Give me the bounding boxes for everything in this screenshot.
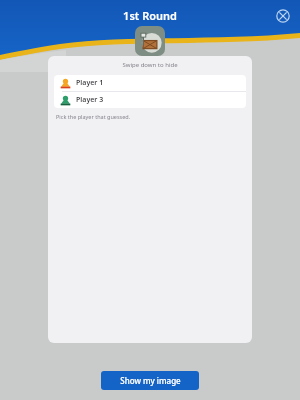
button[interactable]: Close (272, 5, 294, 27)
staticText: Show my image (120, 375, 181, 386)
button[interactable]: Player 1 (54, 75, 246, 91)
button[interactable]: Game image (135, 26, 165, 56)
staticText: Player 1 (76, 78, 104, 88)
button[interactable]: Player 3 (54, 92, 246, 108)
button[interactable]: Show my image (101, 371, 199, 390)
staticText: Swipe down to hide (48, 61, 252, 69)
staticText: Player 3 (76, 95, 104, 105)
staticText: 1st Round (123, 8, 177, 23)
staticText: Pick the player that guessed. (56, 113, 131, 120)
